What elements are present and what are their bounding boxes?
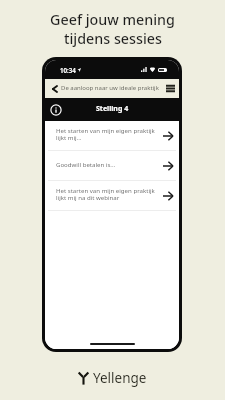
- staticText: Yellenge: [93, 369, 147, 387]
- button[interactable]: Menu: [164, 83, 176, 95]
- button[interactable]: Goodwill betalen is...: [48, 151, 176, 180]
- staticText: tijdens sessies: [64, 29, 162, 48]
- staticText: Goodwill betalen is...: [56, 160, 160, 168]
- button[interactable]: Back: [48, 83, 59, 94]
- staticText: Stelling 4: [96, 104, 129, 114]
- staticText: 10:34: [60, 66, 76, 74]
- button[interactable]: Het starten van mijn eigen praktijk lijk…: [48, 181, 176, 210]
- staticText: Het starten van mijn eigen praktijk lijk…: [56, 186, 160, 201]
- staticText: De aanloop naar uw ideale praktijk: [61, 84, 159, 92]
- staticText: Geef jouw mening: [50, 10, 175, 29]
- staticText: Het starten van mijn eigen praktijk lijk…: [56, 126, 160, 141]
- button[interactable]: Het starten van mijn eigen praktijk lijk…: [48, 121, 176, 150]
